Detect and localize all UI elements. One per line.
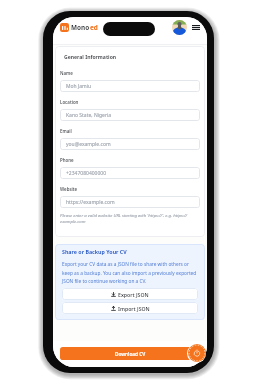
staticText: Website — [60, 186, 78, 192]
staticText: Email — [60, 128, 72, 134]
staticText: Please enter a valid website URL startin… — [60, 212, 200, 225]
button[interactable]: +2347080400000 — [60, 167, 200, 179]
button[interactable]: you@example.com — [60, 138, 200, 150]
button[interactable]: Import JSON — [62, 302, 198, 314]
staticText: ed — [90, 23, 98, 32]
staticText: Phone — [60, 157, 74, 163]
button[interactable]: https://example.com — [60, 196, 200, 208]
staticText: Export JSON — [118, 291, 149, 298]
button[interactable]: Export JSON — [62, 288, 198, 300]
staticText: https://example.com — [66, 199, 115, 206]
staticText: General Information — [64, 54, 117, 61]
staticText: Mono — [71, 23, 90, 32]
staticText: +2347080400000 — [66, 170, 107, 177]
button[interactable]: Download CV — [60, 347, 200, 360]
staticText: Moh Jamiu — [66, 83, 92, 90]
staticText: Location — [60, 99, 79, 105]
button[interactable]: Kano State, Nigeria — [60, 109, 200, 121]
button[interactable]: Moh Jamiu — [60, 80, 200, 92]
button[interactable]: Profile — [172, 20, 187, 35]
staticText: Share or Backup Your CV — [62, 248, 127, 255]
staticText: you@example.com — [66, 141, 111, 148]
staticText: Kano State, Nigeria — [66, 112, 112, 119]
staticText: Name — [60, 70, 73, 76]
staticText: Import JSON — [118, 305, 150, 312]
button[interactable]: Menu — [191, 23, 200, 32]
button[interactable]: Power — [188, 344, 206, 362]
staticText: Export your CV data as a JSON file to sh… — [62, 261, 198, 284]
staticText: Download CV — [115, 351, 146, 357]
